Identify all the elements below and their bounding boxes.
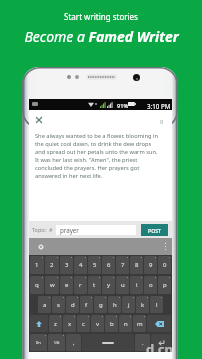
staticText: En bbox=[36, 340, 41, 346]
staticText: z bbox=[54, 320, 57, 328]
staticText: b bbox=[110, 320, 114, 328]
button[interactable]: 1 bbox=[30, 256, 44, 274]
staticText: j bbox=[128, 301, 130, 309]
button[interactable]: f bbox=[80, 296, 93, 313]
staticText: POST bbox=[148, 227, 161, 234]
button[interactable]: u bbox=[116, 276, 129, 294]
staticText: d.cn bbox=[146, 340, 174, 358]
staticText: h bbox=[113, 301, 117, 309]
staticText: Topic: bbox=[32, 226, 47, 233]
button[interactable] bbox=[82, 334, 134, 351]
staticText: c bbox=[82, 320, 85, 328]
staticText: 2 bbox=[50, 261, 54, 269]
button[interactable]: En bbox=[30, 334, 47, 351]
staticText: n bbox=[124, 320, 128, 328]
button[interactable]: 8 bbox=[130, 256, 143, 274]
button[interactable]: o bbox=[144, 276, 157, 294]
staticText: . bbox=[142, 339, 144, 347]
staticText: r bbox=[79, 281, 82, 289]
staticText: 5 bbox=[93, 261, 97, 269]
staticText: prayer bbox=[60, 226, 79, 234]
staticText: 4 bbox=[79, 261, 83, 269]
button[interactable]: , bbox=[66, 334, 81, 351]
staticText: d bbox=[71, 301, 75, 309]
button[interactable]: Backspace bbox=[147, 315, 171, 332]
button[interactable]: x bbox=[63, 315, 76, 332]
button[interactable]: 9 bbox=[144, 256, 157, 274]
staticText: 6 bbox=[107, 261, 111, 269]
staticText: # bbox=[49, 226, 53, 233]
button[interactable]: Shift bbox=[30, 315, 48, 332]
button[interactable]: \!# bbox=[48, 334, 65, 351]
staticText: i bbox=[136, 281, 138, 289]
staticText: v bbox=[96, 320, 100, 328]
staticText: She always wanted to be a flower, bloomi… bbox=[35, 132, 158, 180]
staticText: x bbox=[68, 320, 72, 328]
button[interactable]: t bbox=[88, 276, 101, 294]
staticText: 3 bbox=[65, 261, 69, 269]
button[interactable]: 4 bbox=[74, 256, 87, 274]
staticText: f bbox=[85, 301, 88, 309]
staticText: m bbox=[137, 320, 143, 328]
button[interactable]: Settings bbox=[38, 244, 44, 250]
staticText: Start writing stories bbox=[64, 11, 138, 22]
button[interactable]: 0 bbox=[158, 256, 171, 274]
button[interactable]: a bbox=[38, 296, 51, 313]
button[interactable]: m bbox=[133, 315, 146, 332]
button[interactable]: 7 bbox=[116, 256, 129, 274]
button[interactable]: j bbox=[122, 296, 135, 313]
button[interactable]: i bbox=[130, 276, 143, 294]
staticText: 9 bbox=[149, 261, 153, 269]
button[interactable]: s bbox=[52, 296, 65, 313]
staticText: 7 bbox=[121, 261, 125, 269]
button[interactable]: q bbox=[30, 276, 44, 294]
button[interactable]: z bbox=[49, 315, 62, 332]
staticText: p bbox=[163, 281, 167, 289]
button[interactable]: d bbox=[66, 296, 79, 313]
button[interactable]: k bbox=[136, 296, 149, 313]
button[interactable]: g bbox=[94, 296, 107, 313]
button[interactable]: b bbox=[105, 315, 118, 332]
staticText: 0 bbox=[163, 261, 167, 269]
button[interactable]: 2 bbox=[45, 256, 59, 274]
staticText: Become a Famed Writer bbox=[24, 27, 179, 46]
staticText: \!# bbox=[54, 340, 60, 346]
button[interactable]: e bbox=[60, 276, 73, 294]
button[interactable]: Enter bbox=[151, 334, 171, 351]
button[interactable]: r bbox=[74, 276, 87, 294]
staticText: u bbox=[121, 281, 125, 289]
staticText: l bbox=[156, 301, 158, 309]
staticText: o bbox=[149, 281, 153, 289]
staticText: 9 bbox=[160, 118, 164, 125]
button[interactable]: 3 bbox=[60, 256, 73, 274]
staticText: s bbox=[57, 301, 60, 309]
button[interactable]: p bbox=[158, 276, 171, 294]
button[interactable]: n bbox=[119, 315, 132, 332]
staticText: 1 bbox=[35, 261, 39, 269]
staticText: 3:10 PM bbox=[147, 102, 171, 110]
staticText: e bbox=[65, 281, 69, 289]
staticText: y bbox=[107, 281, 111, 289]
staticText: 8 bbox=[135, 261, 139, 269]
staticText: q bbox=[35, 281, 39, 289]
staticText: a bbox=[43, 301, 47, 309]
button[interactable]: h bbox=[108, 296, 121, 313]
button[interactable]: w bbox=[45, 276, 59, 294]
button[interactable]: 6 bbox=[102, 256, 115, 274]
staticText: w bbox=[50, 281, 55, 289]
button[interactable]: v bbox=[91, 315, 104, 332]
staticText: g bbox=[99, 301, 103, 309]
button[interactable]: l bbox=[150, 296, 163, 313]
button[interactable]: y bbox=[102, 276, 115, 294]
staticText: 91% bbox=[117, 102, 129, 110]
button[interactable]: Close bbox=[32, 113, 45, 126]
staticText: k bbox=[141, 301, 145, 309]
button[interactable]: . bbox=[135, 334, 150, 351]
button[interactable]: 5 bbox=[88, 256, 101, 274]
button[interactable]: c bbox=[77, 315, 90, 332]
staticText: t bbox=[93, 281, 96, 289]
button[interactable]: POST bbox=[141, 224, 168, 236]
staticText: , bbox=[73, 339, 75, 347]
